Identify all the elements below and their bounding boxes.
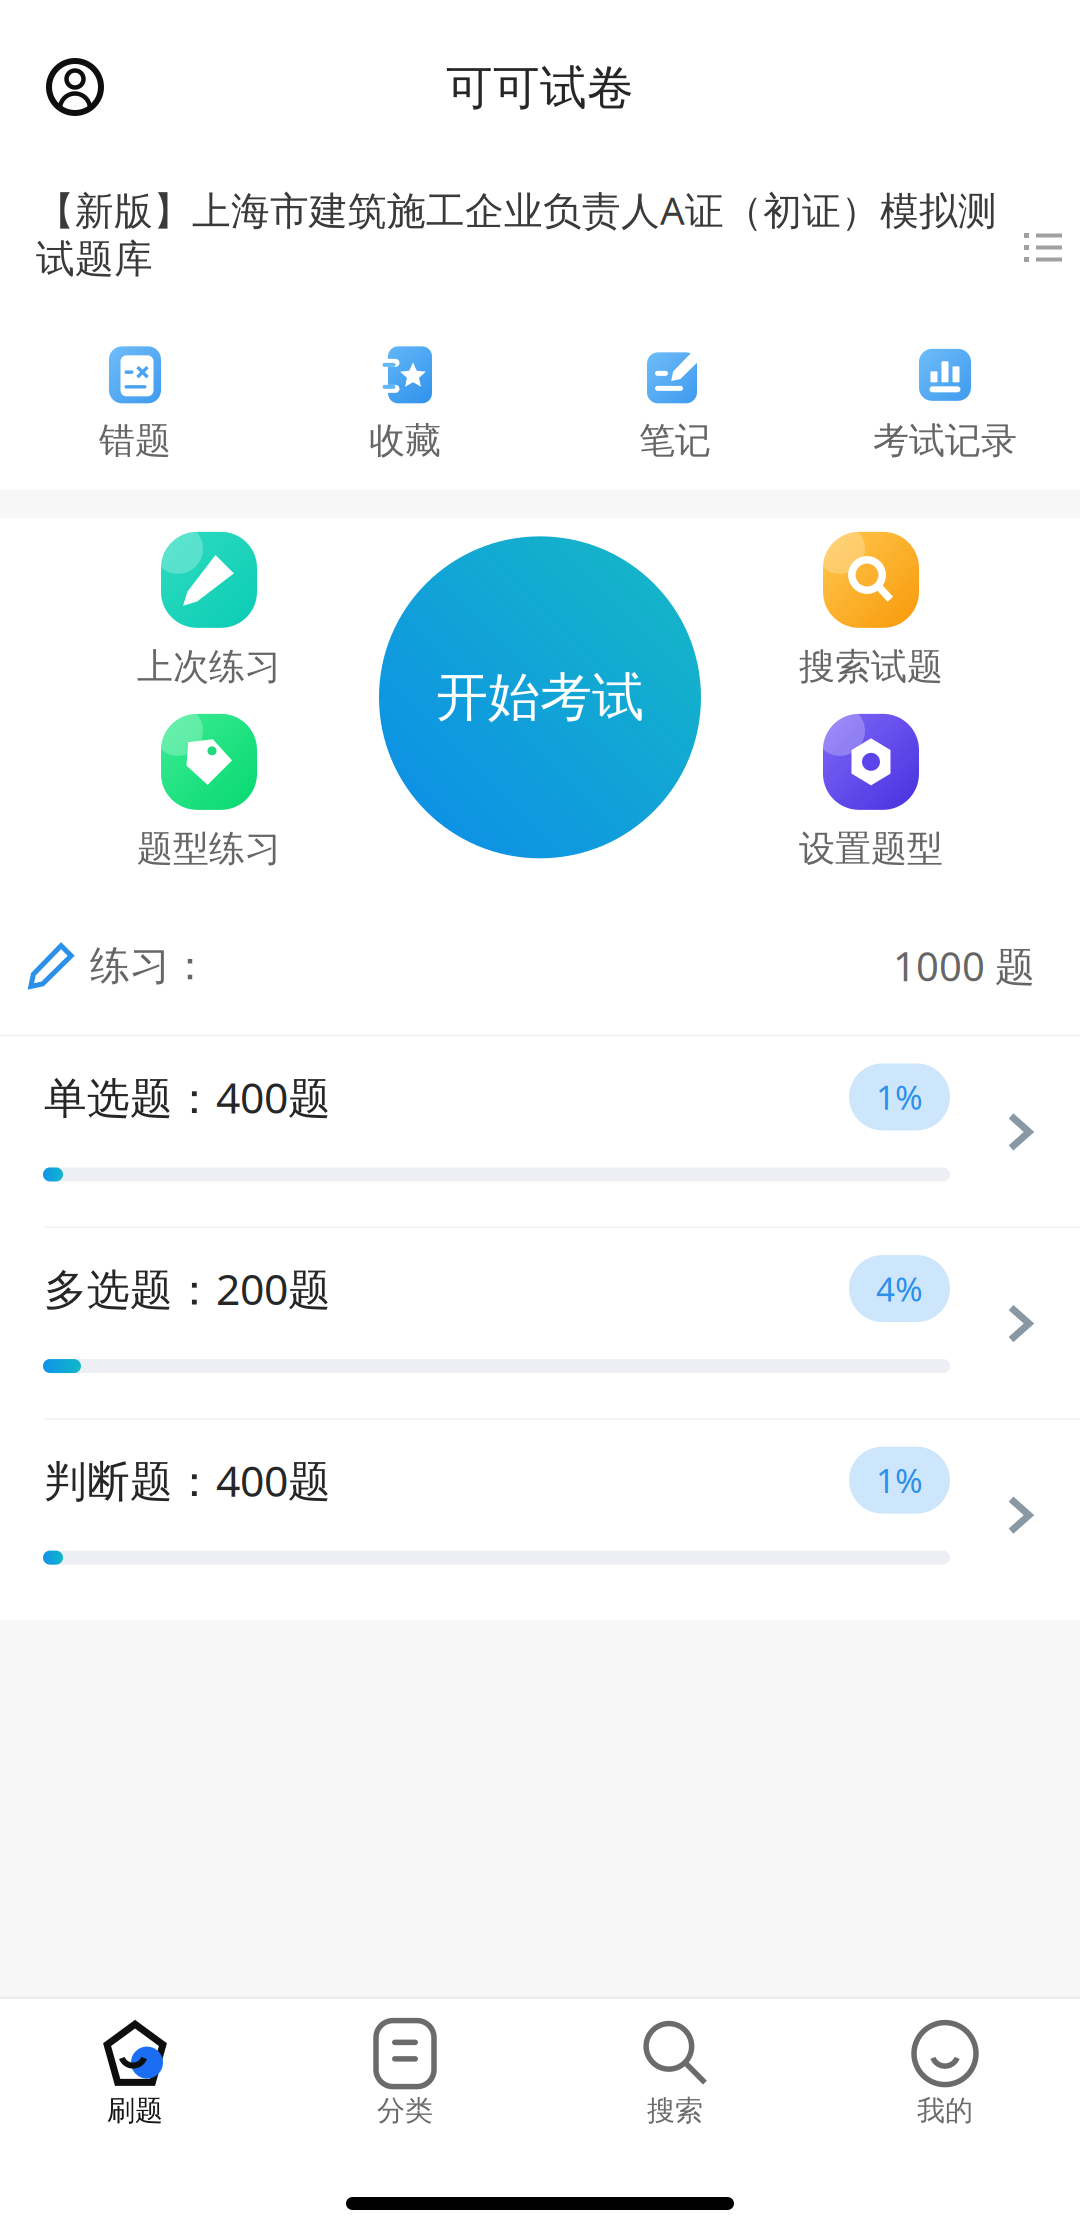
button[interactable]: 判断题：400题	[0, 1420, 1080, 1610]
staticText: 1000 题	[893, 939, 1035, 992]
staticText: 单选题：400题	[44, 1069, 331, 1125]
staticText: 分类	[377, 2093, 433, 2128]
staticText: 1%	[876, 1075, 923, 1119]
button[interactable]: 刷题	[0, 2021, 270, 2128]
button[interactable]: 我的	[810, 2021, 1080, 2128]
button[interactable]: Account	[0, 40, 130, 110]
button[interactable]: 笔记	[540, 346, 810, 464]
staticText: 练习：	[90, 941, 210, 990]
staticText: 【新版】上海市建筑施工企业负责人A证（初证）模拟测试题库	[36, 184, 997, 283]
staticText: 4%	[876, 1266, 923, 1311]
button[interactable]: 题型练习	[137, 714, 281, 872]
button[interactable]: 开始考试	[379, 536, 701, 858]
button[interactable]: 搜索	[540, 2021, 810, 2128]
button[interactable]: 设置题型	[799, 714, 943, 872]
button[interactable]: 多选题：200题	[0, 1228, 1080, 1418]
button[interactable]: 上次练习	[137, 532, 281, 690]
button[interactable]: 收藏	[270, 346, 540, 464]
button[interactable]: 单选题：400题	[0, 1036, 1080, 1226]
button[interactable]: 考试记录	[810, 346, 1080, 464]
staticText: 刷题	[107, 2093, 163, 2128]
staticText: 1%	[876, 1458, 923, 1502]
staticText: 我的	[917, 2093, 973, 2128]
staticText: 开始考试	[436, 665, 644, 729]
staticText: 多选题：200题	[44, 1260, 331, 1317]
staticText: 搜索	[647, 2093, 703, 2128]
staticText: 题型练习	[137, 827, 281, 871]
button[interactable]: 分类	[270, 2021, 540, 2128]
staticText: 考试记录	[873, 419, 1017, 463]
staticText: 错题	[99, 419, 171, 463]
staticText: 设置题型	[799, 827, 943, 871]
staticText: 笔记	[639, 419, 711, 463]
button[interactable]: 错题	[0, 346, 270, 464]
staticText: 判断题：400题	[44, 1452, 331, 1508]
staticText: 可可试卷	[446, 59, 634, 117]
button[interactable]: Question list	[1024, 184, 1080, 263]
staticText: 搜索试题	[799, 645, 943, 689]
button[interactable]: 搜索试题	[799, 532, 943, 690]
staticText: 上次练习	[137, 645, 281, 689]
staticText: 收藏	[369, 419, 441, 463]
